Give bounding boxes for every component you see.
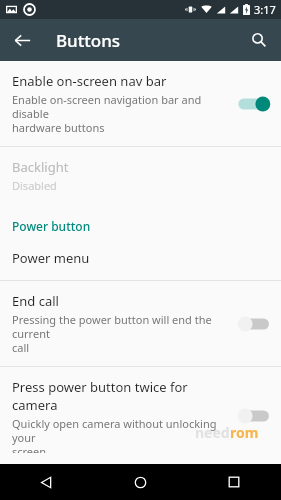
button[interactable]: End call: [0, 281, 281, 366]
staticText: Enable on-screen nav bar: [12, 72, 167, 90]
button[interactable]: Back: [6, 24, 38, 56]
staticText: Backlight: [12, 158, 69, 176]
staticText: Power button: [12, 218, 91, 234]
button[interactable]: Recent apps: [187, 464, 281, 500]
staticText: Press power button twice for camera: [12, 378, 231, 414]
staticText: Quickly open camera without unlocking yo…: [12, 416, 231, 453]
staticText: Enable on-screen navigation bar and disa…: [12, 92, 231, 135]
staticText: End call: [12, 292, 59, 310]
button[interactable]: Press power button twice for camera: [0, 367, 281, 464]
button[interactable]: Power menu: [0, 238, 281, 280]
button[interactable]: Home: [93, 464, 187, 500]
staticText: Power menu: [12, 249, 90, 267]
button[interactable]: Enable on-screen nav bar: [0, 61, 281, 146]
staticText: Buttons: [56, 29, 121, 52]
staticText: Pressing the power button will end the c…: [12, 312, 231, 355]
button[interactable]: Search: [243, 24, 275, 56]
button[interactable]: Back: [0, 464, 93, 500]
staticText: 3:17: [254, 2, 276, 17]
staticText: need: [195, 423, 230, 442]
staticText: rom: [230, 423, 259, 442]
staticText: Disabled: [12, 178, 57, 193]
button[interactable]: Backlight: [0, 147, 281, 204]
